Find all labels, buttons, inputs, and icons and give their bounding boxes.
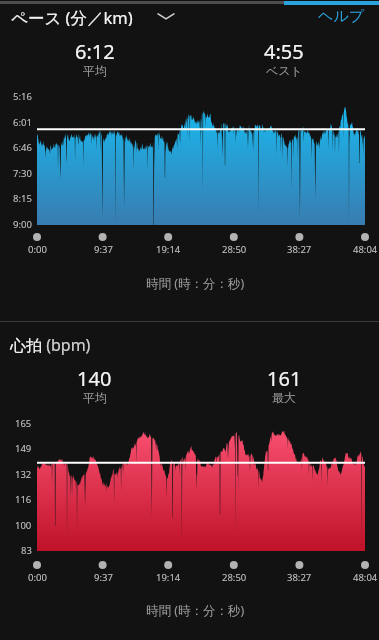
staticText: 心拍 [10,336,42,356]
staticText: 38:27 [287,243,312,256]
staticText: 6:46 [13,141,32,154]
staticText: 平均 [83,390,107,405]
staticText: 7:30 [13,167,32,180]
staticText: 116 [15,493,32,506]
staticText: 6:12 [75,38,115,65]
staticText: ヘルプ [318,7,365,25]
staticText: ペース (分／km) [11,6,133,26]
staticText: 4:55 [264,38,304,65]
staticText: 時間 (時：分：秒) [146,275,245,292]
staticText: 6:01 [13,116,32,129]
staticText: 48:04 [353,571,378,584]
staticText: 38:27 [287,571,312,584]
staticText: 0:00 [28,243,47,256]
staticText: 9:37 [94,243,113,256]
staticText: 83 [21,544,32,557]
staticText: 時間 (時：分：秒) [146,602,245,619]
staticText: 最大 [272,390,296,405]
staticText: 140 [77,365,112,392]
staticText: 28:50 [222,571,247,584]
staticText: 149 [15,442,32,455]
staticText: 100 [15,519,32,532]
staticText: 165 [15,417,32,430]
staticText: 161 [267,365,302,392]
staticText: 8:15 [13,192,32,205]
staticText: 0:00 [28,571,47,584]
staticText: 9:37 [94,571,113,584]
staticText: ベスト [266,63,303,78]
button[interactable]: ヘルプ [304,3,379,29]
staticText: 5:16 [13,90,32,103]
staticText: (bpm) [42,334,91,356]
staticText: 19:14 [156,243,181,256]
staticText: 19:14 [156,571,181,584]
staticText: 9:00 [13,218,32,231]
staticText: 28:50 [222,243,247,256]
staticText: 132 [15,468,32,481]
button[interactable]: ペース (分／km) [0,3,181,29]
staticText: 48:04 [353,243,378,256]
staticText: 平均 [83,63,107,78]
